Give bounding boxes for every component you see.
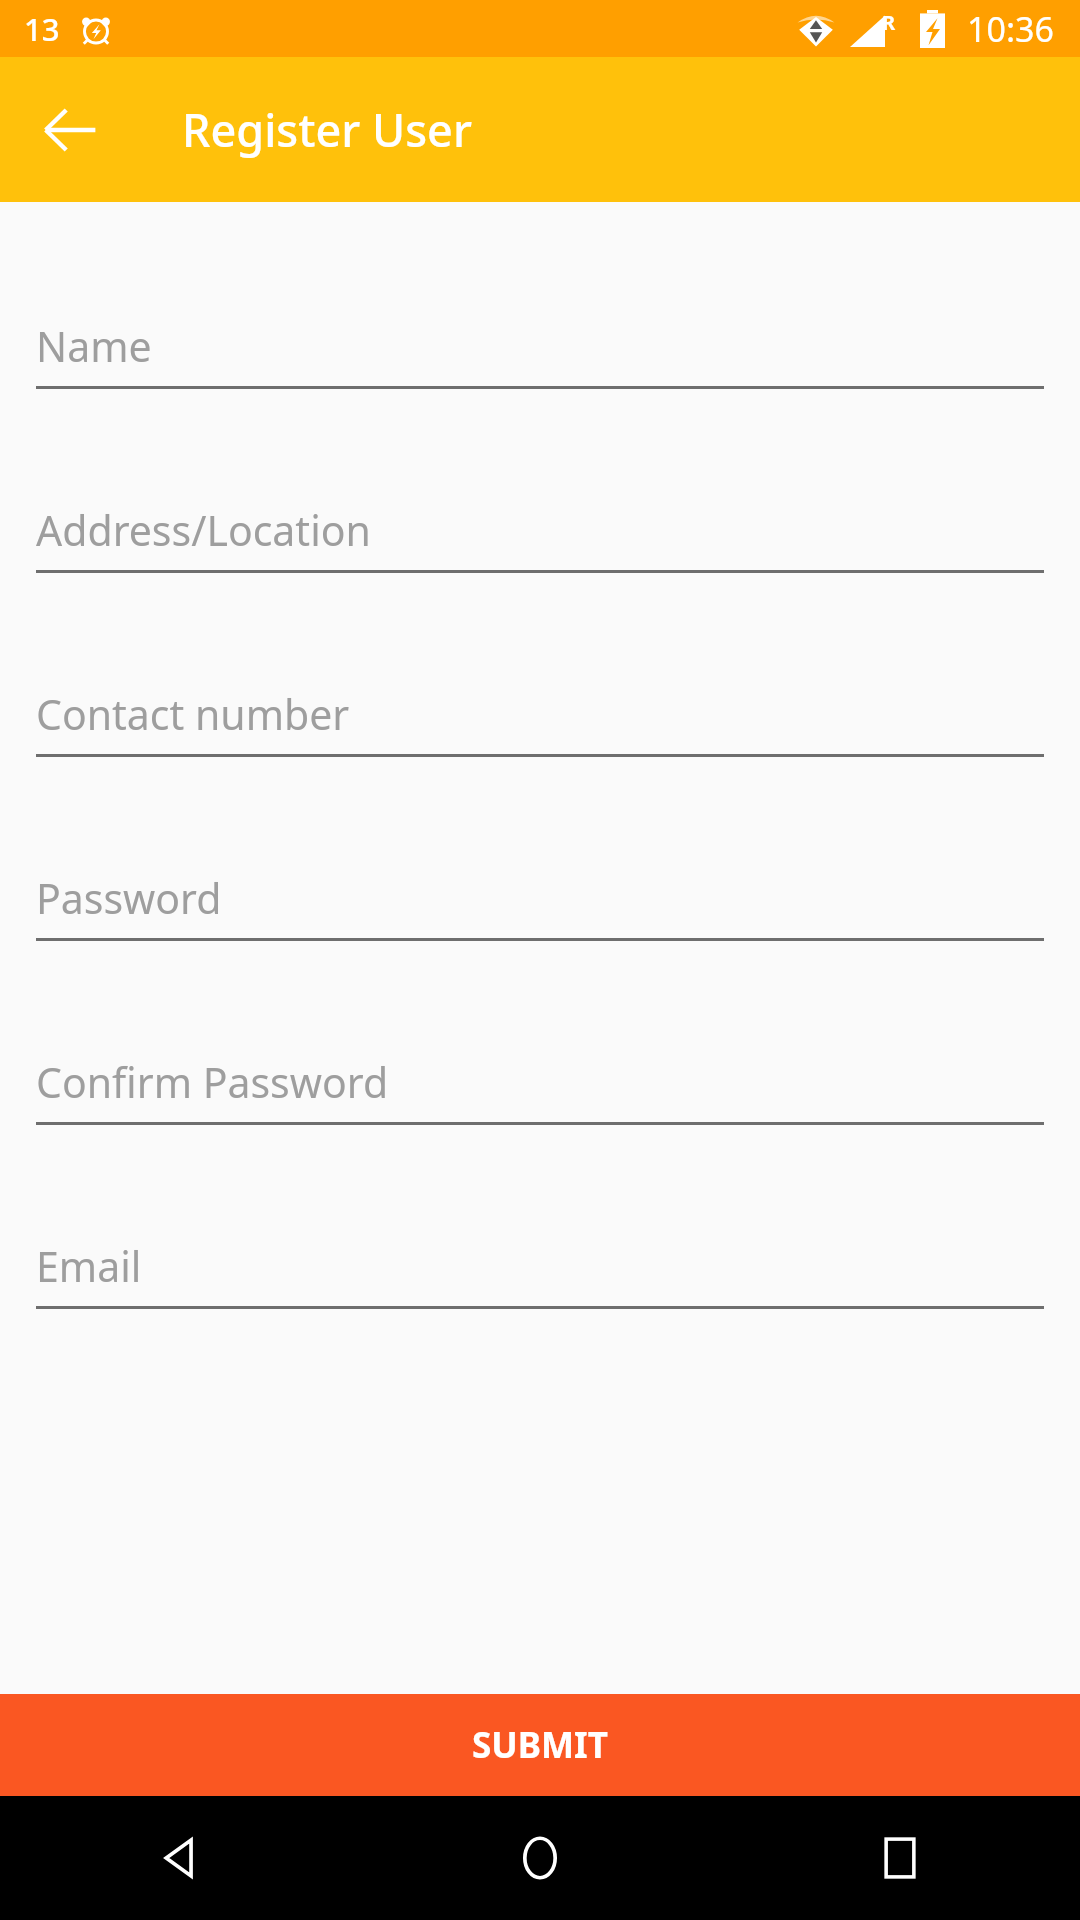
staticText: Confirm Password (36, 1054, 389, 1110)
button[interactable]: Recent apps (720, 1796, 1080, 1920)
staticText: Register User (182, 99, 472, 160)
staticText: Email (36, 1238, 142, 1294)
staticText: 10:36 (967, 6, 1054, 52)
button[interactable]: Address/Location (0, 482, 1080, 666)
staticText: R (882, 9, 896, 36)
staticText: 13 (24, 8, 60, 50)
staticText: Contact number (36, 686, 350, 742)
button[interactable]: SUBMIT (0, 1694, 1080, 1796)
button[interactable]: Contact number (0, 666, 1080, 850)
button[interactable]: Confirm Password (0, 1034, 1080, 1218)
staticText: Password (36, 870, 222, 926)
button[interactable]: Home (360, 1796, 720, 1920)
button[interactable]: Email (0, 1218, 1080, 1402)
button[interactable]: Back (0, 1796, 360, 1920)
button[interactable]: Password (0, 850, 1080, 1034)
staticText: Name (36, 318, 152, 374)
button[interactable]: Name (0, 298, 1080, 482)
button[interactable]: Back (24, 84, 116, 176)
staticText: Address/Location (36, 502, 371, 558)
staticText: SUBMIT (472, 1721, 608, 1769)
